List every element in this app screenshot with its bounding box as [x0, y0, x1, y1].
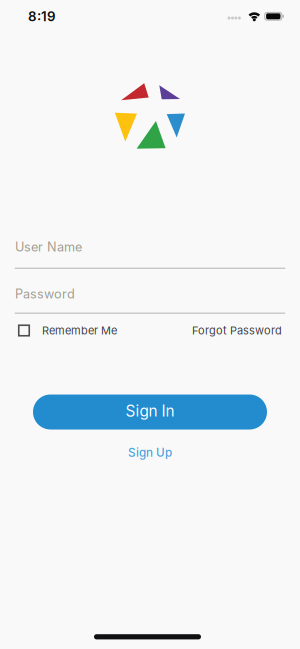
staticText: Password	[15, 286, 75, 302]
staticText: 8:19	[28, 8, 56, 24]
button[interactable]: Sign In	[33, 394, 267, 429]
textField[interactable]: User Name	[15, 239, 285, 255]
staticText: Remember Me	[42, 324, 117, 337]
staticText: Sign In	[125, 402, 174, 420]
secureTextField[interactable]: Password	[15, 286, 285, 302]
button[interactable]: Forgot Password	[192, 324, 282, 337]
button[interactable]: Remember Me	[18, 324, 117, 337]
staticText: Sign Up	[128, 445, 172, 459]
staticText: Forgot Password	[192, 324, 282, 337]
staticText: User Name	[15, 239, 82, 255]
button[interactable]: Sign Up	[128, 445, 172, 459]
